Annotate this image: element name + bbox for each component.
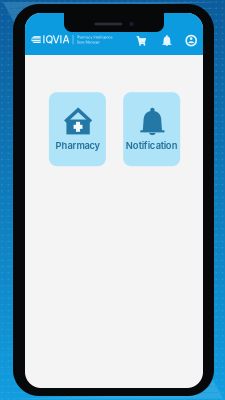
button[interactable]: Profile bbox=[185, 35, 197, 46]
staticText: Store Manager bbox=[77, 40, 100, 44]
button[interactable]: Notifications bbox=[162, 35, 171, 46]
staticText: IQVIA bbox=[42, 33, 69, 46]
button[interactable]: Cart bbox=[136, 35, 146, 46]
staticText: Notification bbox=[126, 140, 178, 151]
button[interactable]: Pharmacy bbox=[49, 92, 106, 166]
staticText: Pharmacy Intelligence bbox=[77, 35, 113, 39]
button[interactable]: Notification bbox=[123, 92, 180, 166]
staticText: Pharmacy bbox=[55, 140, 99, 151]
